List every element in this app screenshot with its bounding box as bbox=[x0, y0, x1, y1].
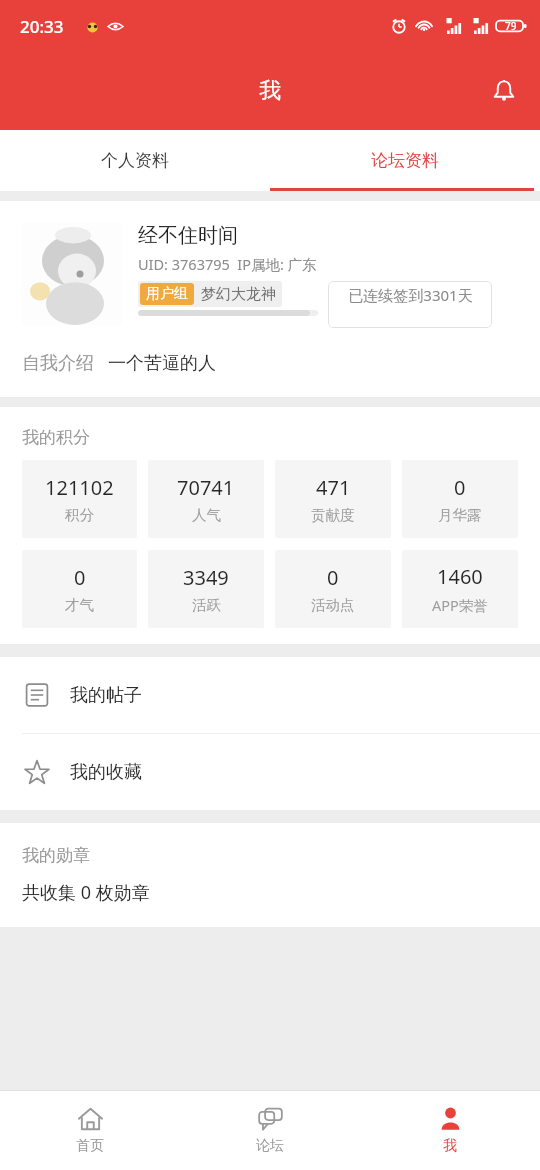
staticText: 活跃 bbox=[192, 596, 221, 614]
staticText: 积分 bbox=[65, 506, 94, 524]
staticText: 一个苦逼的人 bbox=[108, 352, 216, 375]
staticText: 论坛资料 bbox=[371, 150, 439, 171]
button[interactable]: 我 bbox=[360, 1091, 540, 1170]
staticText: 471 bbox=[316, 474, 351, 501]
staticText: 我的勋章 bbox=[22, 845, 90, 866]
button[interactable]: 首页 bbox=[0, 1091, 180, 1170]
staticText: 3349 bbox=[183, 564, 229, 591]
staticText: 我 bbox=[443, 1137, 457, 1155]
button[interactable]: 我的帖子 bbox=[0, 657, 540, 733]
button[interactable]: 0 bbox=[402, 460, 518, 538]
staticText: 70741 bbox=[177, 474, 235, 501]
button[interactable]: Avatar bbox=[22, 223, 122, 325]
staticText: 自我介绍 bbox=[22, 352, 94, 375]
staticText: 0 bbox=[327, 564, 339, 591]
button[interactable]: 个人资料 bbox=[0, 130, 270, 191]
staticText: 已连续签到3301天 bbox=[348, 285, 473, 305]
staticText: 用户组 bbox=[146, 285, 188, 303]
staticText: 活动点 bbox=[311, 596, 355, 614]
staticText: 我 bbox=[259, 77, 281, 105]
staticText: 经不住时间 bbox=[138, 223, 238, 248]
staticText: 贡献度 bbox=[311, 506, 355, 524]
staticText: 共收集 0 枚勋章 bbox=[22, 880, 150, 905]
staticText: 首页 bbox=[76, 1137, 104, 1155]
button[interactable]: 471 bbox=[275, 460, 391, 538]
button[interactable]: 0 bbox=[22, 550, 137, 628]
button[interactable]: 0 bbox=[275, 550, 391, 628]
staticText: 个人资料 bbox=[101, 150, 169, 171]
staticText: 月华露 bbox=[438, 506, 482, 524]
button[interactable]: 已连续签到3301天 bbox=[328, 281, 492, 328]
staticText: 我的帖子 bbox=[70, 684, 142, 707]
staticText: 论坛 bbox=[256, 1137, 284, 1155]
button[interactable]: 1460 bbox=[402, 550, 518, 628]
staticText: 79 bbox=[505, 19, 517, 33]
staticText: 0 bbox=[74, 564, 86, 591]
staticText: 我的积分 bbox=[22, 427, 90, 448]
button[interactable]: 我的收藏 bbox=[0, 734, 540, 810]
button[interactable]: 论坛资料 bbox=[270, 130, 540, 191]
button[interactable]: 70741 bbox=[148, 460, 264, 538]
button[interactable]: 论坛 bbox=[180, 1091, 360, 1170]
staticText: 我的收藏 bbox=[70, 761, 142, 784]
staticText: 梦幻大龙神 bbox=[201, 285, 276, 304]
staticText: 人气 bbox=[192, 506, 221, 524]
button[interactable]: Notifications bbox=[480, 67, 528, 115]
staticText: UID: 3763795 IP属地: 广东 bbox=[138, 254, 317, 274]
button[interactable]: 121102 bbox=[22, 460, 137, 538]
button[interactable]: 3349 bbox=[148, 550, 264, 628]
staticText: 1460 bbox=[437, 563, 483, 590]
staticText: 20:33 bbox=[20, 15, 64, 38]
staticText: 0 bbox=[454, 474, 466, 501]
staticText: APP荣誉 bbox=[432, 595, 488, 615]
staticText: 才气 bbox=[65, 596, 94, 614]
staticText: 121102 bbox=[45, 474, 114, 501]
